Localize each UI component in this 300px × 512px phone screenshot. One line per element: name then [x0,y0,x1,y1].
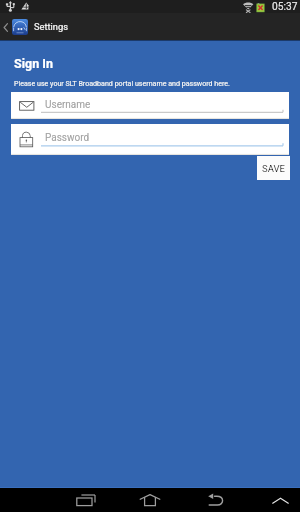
other: Navigate up [2,23,9,32]
staticText: Username [45,99,91,111]
button[interactable]: Menu [246,488,300,512]
button[interactable] [11,124,289,155]
button[interactable] [11,92,289,119]
staticText: SAVE [262,163,285,174]
button[interactable]: Home [118,488,182,512]
staticText: Password [45,132,90,144]
button[interactable]: SAVE [257,156,290,180]
button[interactable]: Recent apps [54,488,118,512]
staticText: Sign In [14,56,53,71]
staticText: 05:37 [272,1,298,13]
button[interactable]: Navigate up [0,13,76,40]
button[interactable]: Back [182,488,246,512]
staticText: Please use your SLT Broadband portal use… [14,79,230,87]
staticText: Settings [34,21,68,32]
